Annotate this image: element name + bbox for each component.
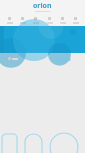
staticText: orion — [56, 55, 71, 62]
button[interactable]: Nav item 1 — [3, 17, 16, 24]
button[interactable]: Nav item 2 — [16, 17, 29, 24]
button[interactable]: orion footnote — [8, 57, 18, 60]
button[interactable]: Nav item 4 — [43, 17, 56, 24]
button[interactable]: Nav item 6 — [69, 17, 82, 24]
button[interactable]: Nav item 5 — [56, 17, 69, 24]
button[interactable]: orion home — [33, 1, 52, 12]
staticText: orion — [33, 1, 52, 11]
button[interactable]: Nav item 3 — [29, 17, 42, 24]
